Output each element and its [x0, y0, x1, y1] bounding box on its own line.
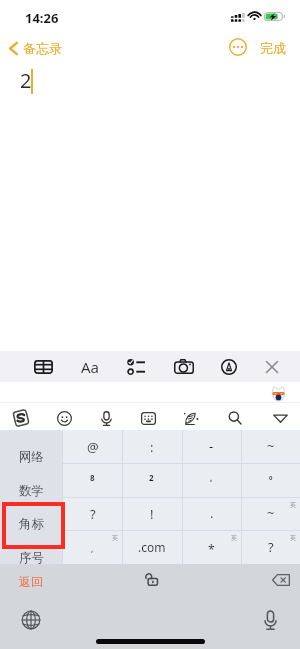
- button[interactable]: 清单: [115, 351, 157, 382]
- button[interactable]: ?: [63, 497, 122, 530]
- staticText: @: [87, 438, 99, 456]
- button[interactable]: 键盘: [129, 406, 167, 430]
- button[interactable]: @: [63, 430, 122, 463]
- button[interactable]: ?: [241, 530, 300, 563]
- staticText: ?: [90, 505, 96, 523]
- staticText: 英: [112, 534, 118, 542]
- staticText: .com: [138, 539, 166, 555]
- staticText: Aa: [81, 357, 100, 377]
- staticText: ~: [267, 504, 275, 522]
- button[interactable]: 序号: [0, 542, 62, 574]
- staticText: 备忘录: [23, 40, 62, 56]
- button[interactable]: 搜狗: [2, 406, 40, 430]
- staticText: :: [150, 438, 154, 456]
- button[interactable]: 字体: [69, 351, 111, 382]
- button[interactable]: 锁定: [138, 567, 162, 591]
- button[interactable]: 备忘录: [9, 37, 62, 59]
- staticText: 0: [269, 474, 273, 482]
- button[interactable]: 返回: [19, 574, 43, 589]
- button[interactable]: 手写: [172, 406, 210, 430]
- button[interactable]: .: [182, 497, 241, 530]
- button[interactable]: *: [182, 530, 241, 563]
- button[interactable]: ,: [182, 463, 241, 496]
- staticText: 网络: [19, 449, 44, 465]
- button[interactable]: ~: [241, 497, 300, 530]
- button[interactable]: 搜索: [216, 406, 254, 430]
- button[interactable]: 关闭: [251, 351, 293, 382]
- button[interactable]: -: [182, 430, 241, 463]
- button[interactable]: !: [122, 497, 181, 530]
- staticText: 角标: [19, 516, 44, 532]
- button[interactable]: 更多: [229, 38, 247, 56]
- staticText: .: [210, 504, 214, 522]
- button[interactable]: 完成: [260, 40, 286, 56]
- staticText: *: [208, 541, 215, 557]
- button[interactable]: 语音输入: [258, 608, 282, 632]
- button[interactable]: 删除: [269, 571, 293, 589]
- button[interactable]: 表格: [22, 351, 64, 382]
- staticText: 数学: [19, 483, 44, 499]
- button[interactable]: 切换键盘: [19, 608, 43, 632]
- staticText: !: [150, 505, 154, 523]
- staticText: 14:26: [25, 9, 59, 27]
- button[interactable]: 8: [63, 463, 122, 496]
- button[interactable]: 标记: [208, 351, 250, 382]
- staticText: 英: [290, 534, 296, 542]
- button[interactable]: 网络: [0, 441, 62, 473]
- staticText: ,: [210, 472, 213, 483]
- button[interactable]: 数学: [0, 475, 62, 507]
- button[interactable]: ~: [241, 430, 300, 463]
- button[interactable]: ,: [63, 530, 122, 563]
- staticText: ,: [91, 542, 94, 554]
- button[interactable]: 角标: [0, 508, 62, 540]
- staticText: 英: [231, 534, 237, 542]
- button[interactable]: 语音: [87, 406, 125, 430]
- staticText: 序号: [19, 550, 44, 566]
- staticText: -: [209, 437, 214, 455]
- staticText: 2: [149, 472, 154, 483]
- staticText: 英: [290, 501, 296, 509]
- button[interactable]: 表情: [45, 406, 83, 430]
- button[interactable]: .com: [122, 530, 181, 563]
- staticText: ?: [268, 538, 274, 556]
- button[interactable]: 收起: [261, 406, 299, 430]
- staticText: 8: [90, 472, 95, 483]
- button[interactable]: 2: [122, 463, 181, 496]
- button[interactable]: 0: [241, 463, 300, 496]
- button[interactable]: :: [122, 430, 181, 463]
- staticText: ~: [267, 437, 275, 455]
- button[interactable]: 相机: [163, 351, 205, 382]
- staticText: 2: [20, 67, 32, 94]
